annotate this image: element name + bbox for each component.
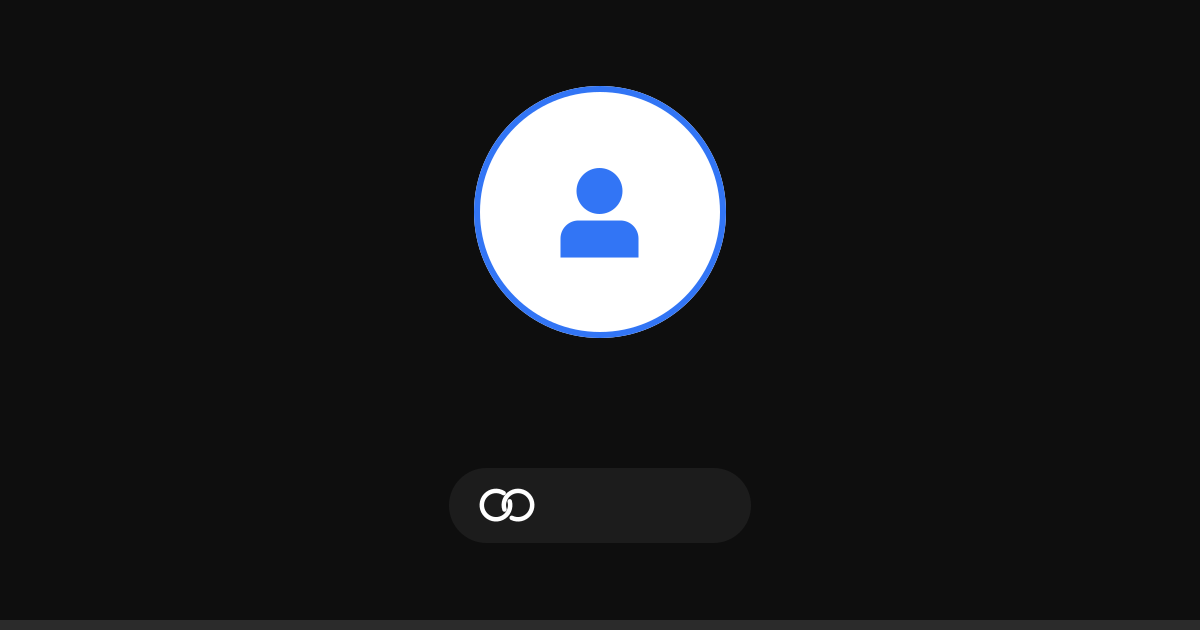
- button[interactable]: Copy link: [449, 468, 751, 543]
